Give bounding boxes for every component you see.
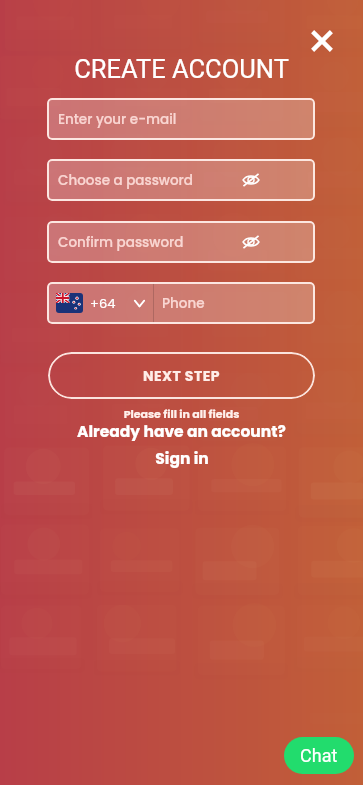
staticText: NEXT STEP — [143, 366, 221, 386]
button[interactable]: Enter your e-mail — [47, 98, 315, 140]
staticText: CREATE ACCOUNT — [0, 54, 363, 84]
staticText: Phone — [162, 294, 205, 313]
button[interactable]: +64 — [47, 282, 153, 324]
staticText: Confirm password — [58, 233, 184, 252]
button[interactable]: Close — [305, 24, 339, 58]
button[interactable]: Choose a password — [47, 159, 315, 201]
staticText: Choose a password — [58, 171, 193, 190]
staticText: Already have an account? — [0, 421, 363, 443]
button[interactable]: Sign in — [145, 447, 219, 471]
staticText: +64 — [90, 294, 116, 312]
button[interactable]: Toggle password visibility — [238, 229, 264, 255]
button[interactable]: Phone — [154, 282, 315, 324]
button[interactable]: NEXT STEP — [48, 352, 315, 399]
staticText: Chat — [300, 745, 338, 766]
button[interactable]: Toggle password visibility — [238, 167, 264, 193]
button[interactable]: Chat — [284, 737, 354, 774]
staticText: Enter your e-mail — [58, 110, 177, 129]
staticText: Please fill in all fields — [0, 406, 363, 421]
button[interactable]: Confirm password — [47, 221, 315, 263]
